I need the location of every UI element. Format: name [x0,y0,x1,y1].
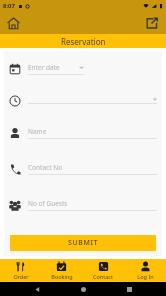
staticText: Reservation [61,36,106,47]
staticText: Name [28,127,47,136]
button[interactable]: Recent apps [120,282,138,296]
button[interactable]: Home [74,282,92,296]
button[interactable]: Home [3,13,23,33]
button[interactable]: Name [4,122,162,144]
button[interactable]: Order [0,259,41,282]
button[interactable]: SUBMIT [10,235,156,251]
staticText: Log In [137,273,154,280]
button[interactable]: Date [4,58,162,80]
staticText: SUBMIT [68,238,99,248]
button[interactable]: Log In [124,259,166,282]
button[interactable]: Time [4,90,162,112]
staticText: Contact [93,273,113,280]
button[interactable]: Booking [41,259,82,282]
staticText: Booking [51,273,73,280]
button[interactable]: Contact [82,259,124,282]
button[interactable]: Contact number [4,158,162,180]
staticText: Enter date [28,63,60,72]
button[interactable]: Share [142,13,162,33]
button[interactable]: Back [28,282,46,296]
staticText: 8:07 [3,2,15,10]
staticText: Order [13,273,29,280]
button[interactable]: Number of guests [4,194,162,216]
staticText: No of Guests [28,199,68,208]
staticText: Contact No [28,163,63,172]
